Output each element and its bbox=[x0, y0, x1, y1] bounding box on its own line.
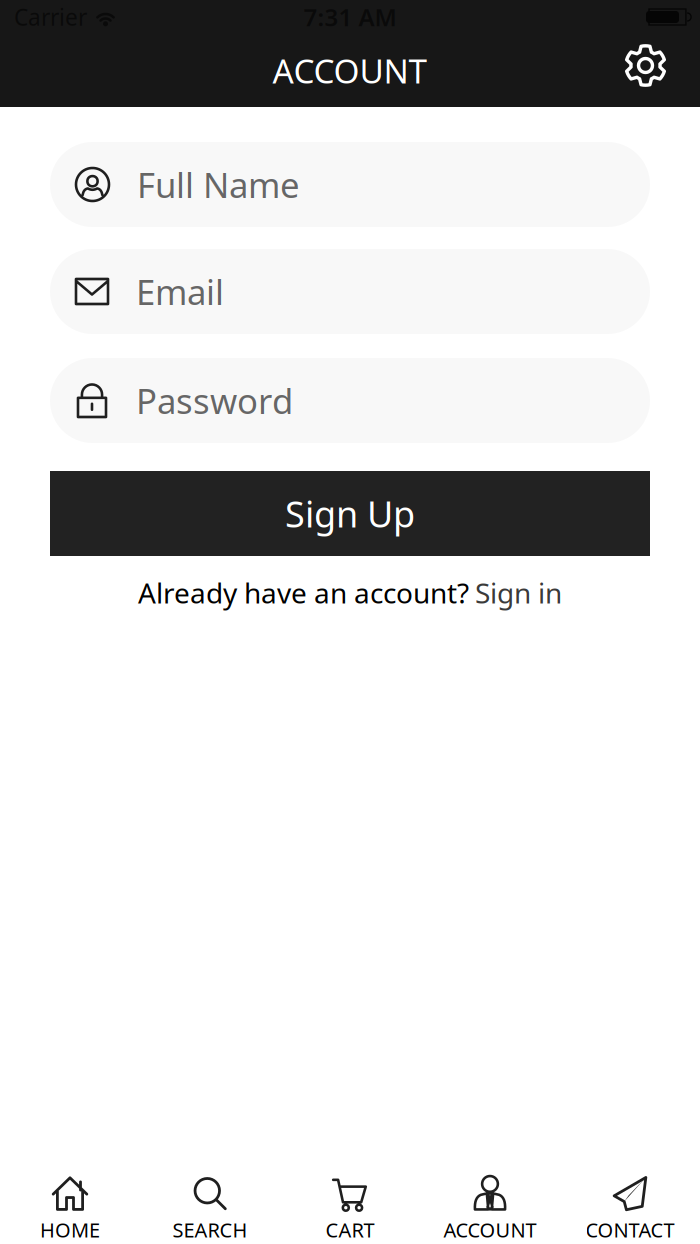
button[interactable]: Settings bbox=[625, 45, 666, 86]
staticText: CONTACT bbox=[585, 1216, 674, 1243]
staticText: ACCOUNT bbox=[272, 48, 427, 93]
button[interactable]: HOME bbox=[0, 1176, 140, 1243]
staticText: SEARCH bbox=[172, 1216, 247, 1243]
staticText: Full Name bbox=[137, 161, 300, 207]
button[interactable]: Password bbox=[50, 358, 650, 443]
staticText: ACCOUNT bbox=[443, 1216, 536, 1243]
staticText: CART bbox=[325, 1216, 374, 1243]
staticText: HOME bbox=[40, 1216, 100, 1243]
staticText: Email bbox=[136, 268, 224, 314]
button[interactable]: Email bbox=[50, 249, 650, 334]
button[interactable]: SEARCH bbox=[140, 1176, 280, 1243]
staticText: Sign Up bbox=[285, 490, 415, 537]
button[interactable]: CONTACT bbox=[560, 1176, 700, 1243]
staticText: 7:31 AM bbox=[303, 1, 396, 33]
staticText: Password bbox=[136, 377, 293, 423]
button[interactable]: Sign Up bbox=[50, 471, 650, 556]
staticText: Sign in bbox=[475, 574, 562, 611]
button[interactable]: Full Name bbox=[50, 142, 650, 227]
staticText: Carrier bbox=[14, 2, 87, 32]
button[interactable]: Sign in bbox=[475, 574, 562, 611]
staticText: Already have an account? bbox=[138, 574, 469, 611]
button[interactable]: ACCOUNT bbox=[420, 1176, 560, 1243]
button[interactable]: CART bbox=[280, 1176, 420, 1243]
